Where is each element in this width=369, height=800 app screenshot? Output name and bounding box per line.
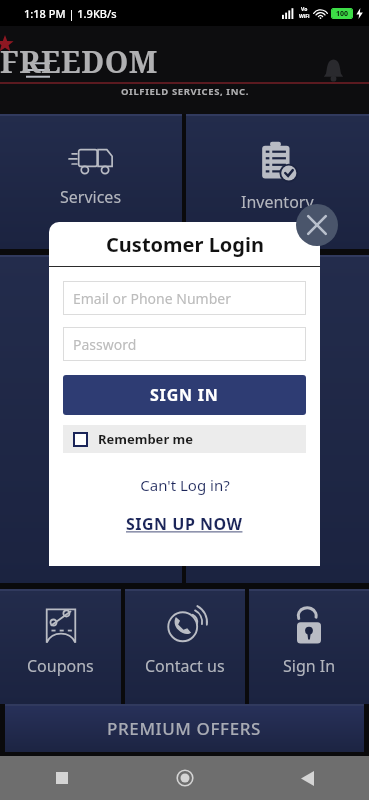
- staticText: SIGN UP NOW: [126, 513, 243, 535]
- button[interactable]: Can't Log in?: [63, 475, 306, 495]
- button[interactable]: [186, 255, 369, 583]
- button[interactable]: Home: [123, 756, 246, 800]
- button[interactable]: Contact us: [125, 589, 245, 704]
- button[interactable]: Close: [296, 204, 338, 246]
- staticText: Contact us: [145, 655, 225, 677]
- button[interactable]: Coupons: [0, 589, 121, 704]
- button[interactable]: Recent apps: [0, 756, 123, 800]
- button[interactable]: Notifications: [313, 50, 353, 90]
- button[interactable]: Back: [246, 756, 369, 800]
- button[interactable]: Open navigation menu: [18, 50, 58, 90]
- staticText: Vo: [301, 6, 308, 13]
- button[interactable]: Remember me: [63, 425, 306, 453]
- staticText: Remember me: [98, 430, 194, 448]
- staticText: PREMIUM OFFERS: [107, 717, 262, 740]
- button[interactable]: Services: [0, 114, 182, 249]
- staticText: 1:18 PM | 1.9KB/s: [24, 6, 117, 21]
- staticText: 100: [336, 9, 349, 18]
- staticText: Can't Log in?: [140, 475, 230, 495]
- button[interactable]: Inventory: [186, 114, 369, 249]
- button[interactable]: [0, 255, 182, 583]
- staticText: Customer Login: [106, 231, 264, 258]
- staticText: Sign In: [283, 655, 336, 677]
- staticText: Inventory: [241, 191, 314, 213]
- staticText: SIGN IN: [150, 384, 219, 406]
- button[interactable]: PREMIUM OFFERS: [5, 704, 364, 752]
- button[interactable]: SIGN UP NOW: [63, 513, 306, 535]
- button[interactable]: Password: [63, 327, 306, 361]
- button[interactable]: SIGN IN: [63, 375, 306, 415]
- staticText: Services: [60, 186, 122, 208]
- staticText: WiFi: [299, 13, 310, 20]
- staticText: Email or Phone Number: [73, 289, 231, 308]
- button[interactable]: Email or Phone Number: [63, 281, 306, 315]
- staticText: Coupons: [27, 655, 94, 677]
- button[interactable]: Sign In: [249, 589, 369, 704]
- staticText: Password: [73, 335, 137, 354]
- staticText: FREEDOM: [0, 41, 158, 82]
- staticText: OILFIELD SERVICES, INC.: [121, 85, 249, 98]
